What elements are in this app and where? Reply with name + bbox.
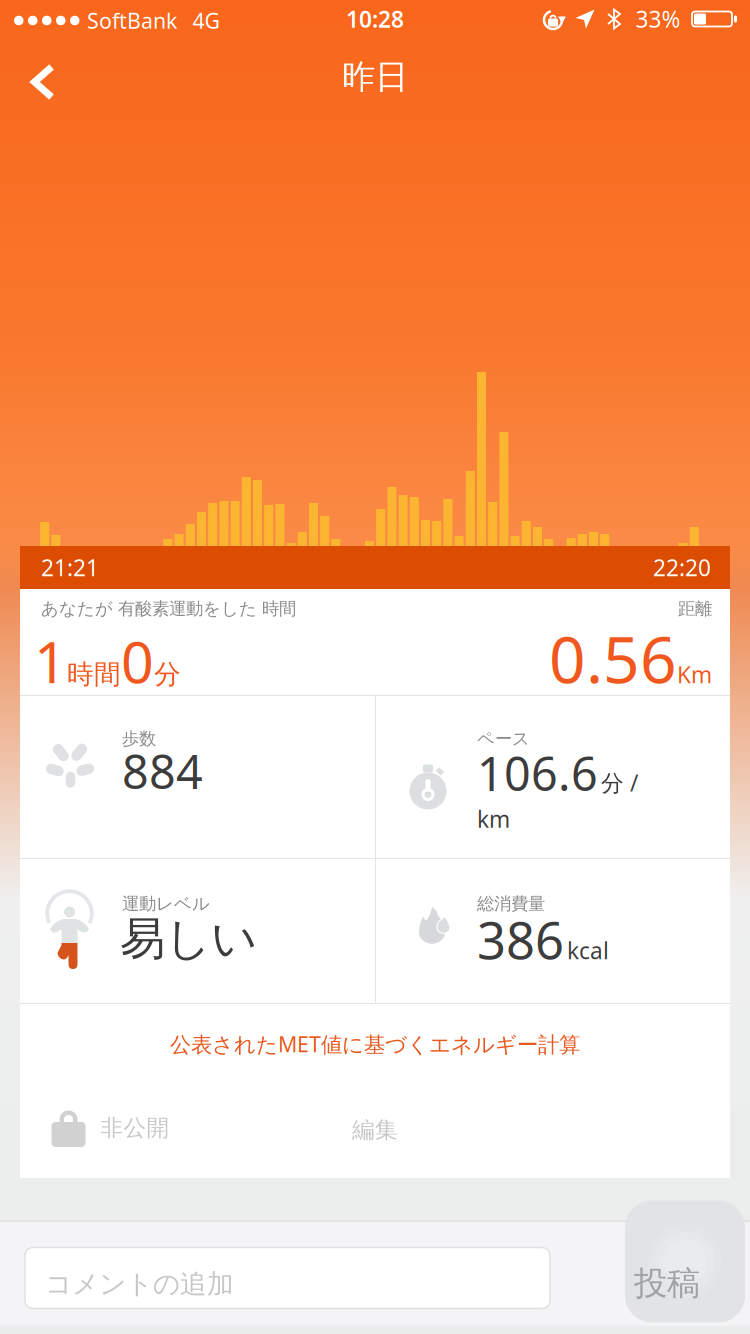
staticText: 分 / <box>601 768 638 798</box>
staticText: 公表されたMET値に基づくエネルギー計算 <box>170 1030 580 1058</box>
staticText: あなたが 有酸素運動をした 時間 <box>41 598 296 619</box>
staticText: 106.6 <box>477 742 598 804</box>
staticText: コメントの追加 <box>45 1268 234 1300</box>
staticText: Km <box>677 659 712 690</box>
staticText: 距離 <box>678 598 712 619</box>
button[interactable]: コメントの追加 <box>25 1247 550 1308</box>
staticText: ペース <box>477 728 530 749</box>
staticText: 昨日 <box>342 56 408 97</box>
staticText: SoftBank <box>87 6 177 35</box>
button[interactable]: AssistiveTouch <box>625 1200 745 1322</box>
staticText: 21:21 <box>41 552 99 582</box>
staticText: 分 <box>154 658 181 691</box>
staticText: 歩数 <box>122 728 156 749</box>
staticText: 386 <box>477 906 564 973</box>
staticText: kcal <box>567 935 609 966</box>
staticText: 時間 <box>67 658 121 691</box>
staticText: 運動レベル <box>122 893 210 914</box>
staticText: 0.56 <box>549 616 677 701</box>
staticText: 33% <box>635 4 680 34</box>
staticText: 総消費量 <box>477 893 545 914</box>
staticText: 非公開 <box>100 1114 169 1142</box>
button[interactable]: 編集 <box>352 1116 398 1144</box>
staticText: 22:20 <box>653 552 711 582</box>
staticText: 編集 <box>352 1116 398 1144</box>
staticText: 10:28 <box>346 4 404 34</box>
button[interactable]: 公表されたMET値に基づくエネルギー計算 <box>170 1030 580 1058</box>
staticText: 0 <box>121 623 154 699</box>
staticText: 1 <box>34 623 67 699</box>
staticText: 884 <box>122 740 203 802</box>
button[interactable]: 非公開 <box>50 1109 169 1147</box>
staticText: 4G <box>192 6 220 35</box>
button[interactable]: 投稿 <box>634 1263 700 1304</box>
staticText: 易しい <box>120 911 257 967</box>
staticText: 投稿 <box>634 1263 700 1304</box>
staticText: km <box>477 804 510 834</box>
button[interactable]: Back <box>30 64 55 100</box>
